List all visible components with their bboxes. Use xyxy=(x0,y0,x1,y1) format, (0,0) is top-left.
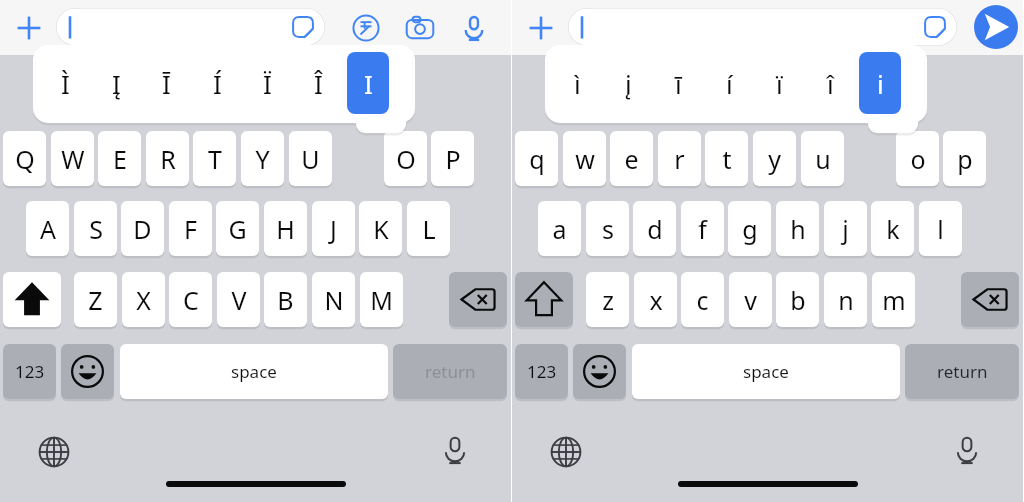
staticText: k xyxy=(886,212,900,246)
button[interactable]: u xyxy=(801,131,844,186)
button[interactable]: U xyxy=(289,131,332,186)
button[interactable]: d xyxy=(633,201,676,256)
button[interactable]: space xyxy=(120,344,388,399)
button[interactable]: Dictate xyxy=(434,429,476,471)
button[interactable]: o xyxy=(896,131,939,186)
button[interactable]: V xyxy=(217,272,260,327)
button[interactable]: Backspace xyxy=(449,272,507,327)
button[interactable]: t xyxy=(705,131,748,186)
staticText: O xyxy=(396,142,416,176)
button[interactable]: Change keyboard language xyxy=(34,432,74,472)
button[interactable]: 123 xyxy=(3,344,56,399)
button[interactable]: y xyxy=(753,131,796,186)
button[interactable]: N xyxy=(312,272,355,327)
button[interactable]: K xyxy=(359,201,402,256)
button[interactable]: I xyxy=(347,52,389,114)
button[interactable]: B xyxy=(264,272,307,327)
button[interactable]: b xyxy=(776,272,819,327)
button[interactable]: ī xyxy=(657,52,699,114)
button[interactable]: Q xyxy=(3,131,46,186)
button[interactable]: T xyxy=(193,131,236,186)
button[interactable]: Stickers xyxy=(56,8,325,46)
button[interactable]: Shift xyxy=(3,272,61,327)
button[interactable]: s xyxy=(586,201,629,256)
button[interactable]: į xyxy=(607,52,649,114)
button[interactable]: f xyxy=(681,201,724,256)
button[interactable]: Į xyxy=(95,52,137,114)
button[interactable]: Change keyboard language xyxy=(546,432,586,472)
button[interactable]: H xyxy=(264,201,307,256)
button[interactable]: r xyxy=(658,131,701,186)
button[interactable]: F xyxy=(169,201,212,256)
button[interactable]: j xyxy=(824,201,867,256)
button[interactable]: Ï xyxy=(246,52,288,114)
button[interactable]: Shift xyxy=(515,272,573,327)
button[interactable]: k xyxy=(871,201,914,256)
staticText: Į xyxy=(112,66,121,101)
button[interactable]: A xyxy=(26,201,69,256)
button[interactable]: w xyxy=(563,131,606,186)
button[interactable]: i xyxy=(859,52,901,114)
button[interactable]: L xyxy=(407,201,450,256)
button[interactable]: E xyxy=(98,131,141,186)
button[interactable]: g xyxy=(728,201,771,256)
button[interactable]: Stickers xyxy=(288,12,318,42)
button[interactable]: 123 xyxy=(515,344,568,399)
button[interactable]: Í xyxy=(196,52,238,114)
button[interactable]: P xyxy=(431,131,474,186)
button[interactable]: M xyxy=(360,272,403,327)
button[interactable]: x xyxy=(634,272,677,327)
button[interactable]: Stickers xyxy=(920,12,950,42)
button[interactable]: Camera xyxy=(401,9,439,47)
button[interactable]: return xyxy=(905,344,1019,399)
button[interactable]: m xyxy=(872,272,915,327)
button[interactable]: v xyxy=(729,272,772,327)
button[interactable]: n xyxy=(824,272,867,327)
button[interactable]: î xyxy=(809,52,851,114)
button[interactable]: í xyxy=(708,52,750,114)
button[interactable]: return xyxy=(393,344,507,399)
button[interactable]: l xyxy=(919,201,962,256)
button[interactable]: h xyxy=(776,201,819,256)
button[interactable]: Y xyxy=(241,131,284,186)
button[interactable]: S xyxy=(74,201,117,256)
button[interactable]: W xyxy=(51,131,94,186)
button[interactable]: C xyxy=(169,272,212,327)
staticText: A xyxy=(40,212,56,246)
button[interactable]: D xyxy=(121,201,164,256)
staticText: h xyxy=(790,212,806,246)
button[interactable]: Stickers xyxy=(568,8,957,46)
button[interactable]: R xyxy=(146,131,189,186)
button[interactable]: Ī xyxy=(145,52,187,114)
staticText: b xyxy=(790,283,806,317)
button[interactable]: Emoji xyxy=(61,344,114,399)
button[interactable]: Emoji xyxy=(573,344,626,399)
staticText: D xyxy=(133,212,152,246)
button[interactable]: J xyxy=(312,201,355,256)
staticText: R xyxy=(160,142,176,176)
button[interactable]: space xyxy=(632,344,900,399)
button[interactable]: Î xyxy=(297,52,339,114)
button[interactable]: a xyxy=(538,201,581,256)
button[interactable]: Payments xyxy=(347,9,385,47)
button[interactable]: G xyxy=(216,201,259,256)
button[interactable]: z xyxy=(586,272,629,327)
button[interactable]: X xyxy=(122,272,165,327)
button[interactable]: Add attachment xyxy=(10,9,48,47)
button[interactable]: ì xyxy=(556,52,598,114)
button[interactable]: Ì xyxy=(44,52,86,114)
button[interactable]: ï xyxy=(758,52,800,114)
button[interactable]: c xyxy=(681,272,724,327)
button[interactable]: O xyxy=(384,131,427,186)
button[interactable]: Dictate xyxy=(946,429,988,471)
button[interactable]: Send xyxy=(974,5,1018,49)
button[interactable]: e xyxy=(610,131,653,186)
button[interactable]: Z xyxy=(74,272,117,327)
button[interactable]: q xyxy=(515,131,558,186)
staticText: P xyxy=(445,142,461,176)
staticText: e xyxy=(624,142,639,176)
button[interactable]: p xyxy=(943,131,986,186)
button[interactable]: Add attachment xyxy=(522,9,560,47)
button[interactable]: Voice message xyxy=(455,9,493,47)
button[interactable]: Backspace xyxy=(961,272,1019,327)
